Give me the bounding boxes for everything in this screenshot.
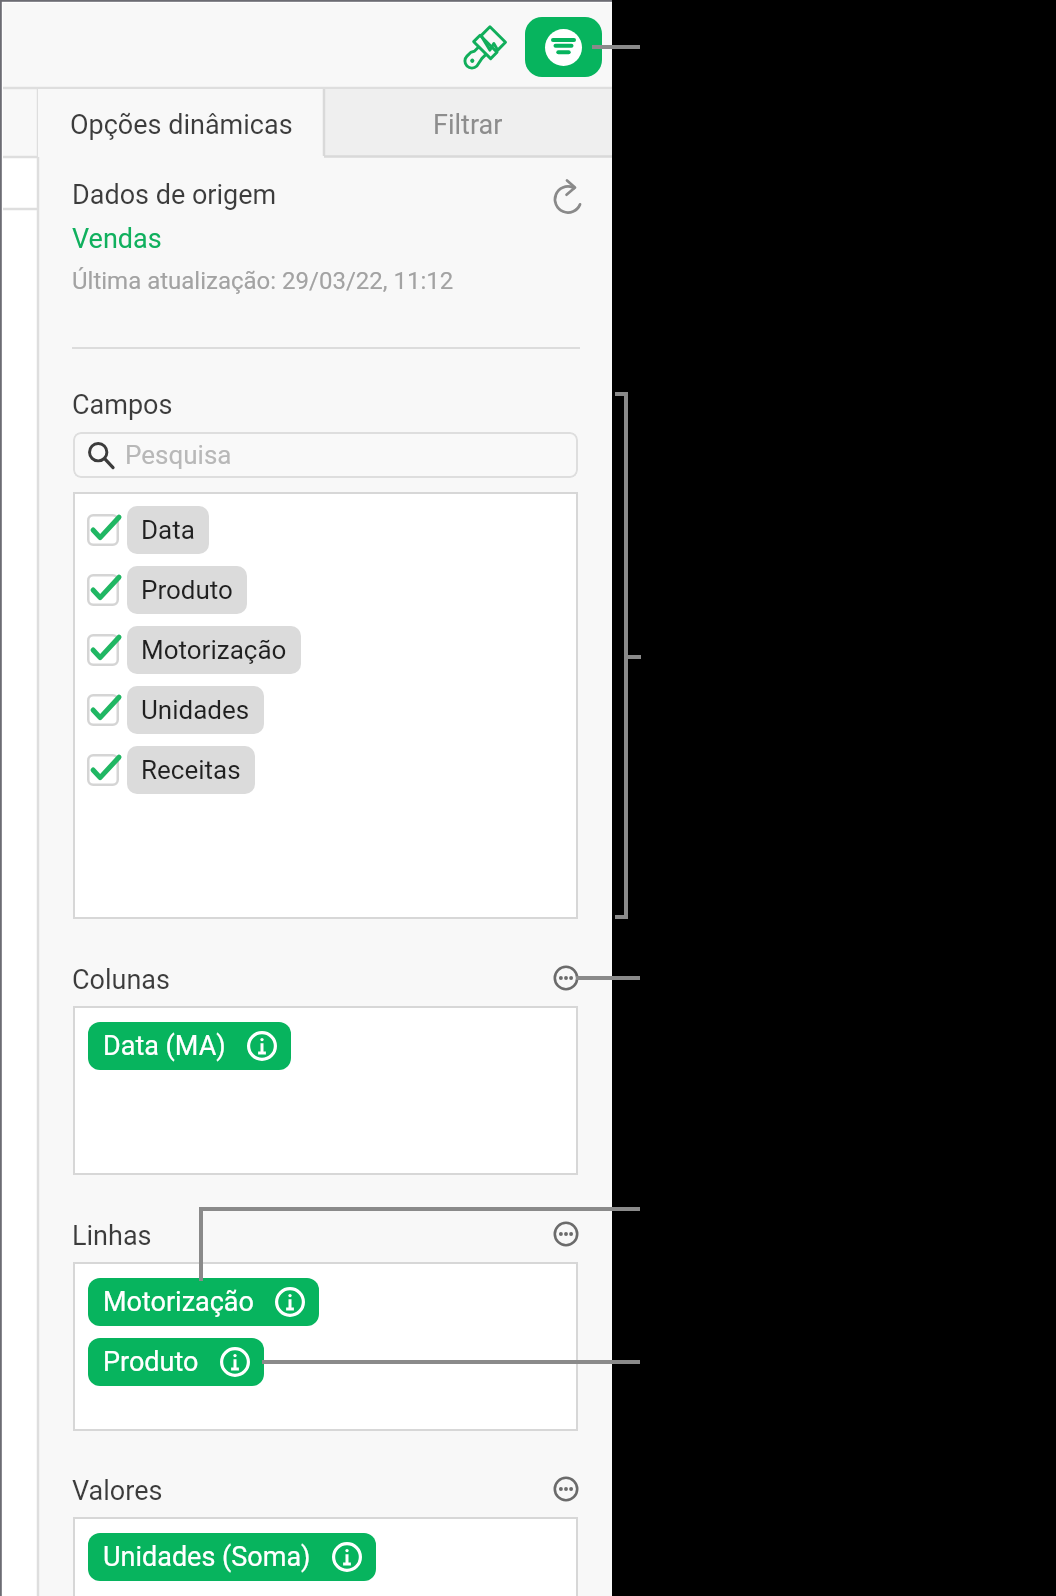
staticText: Motorização bbox=[141, 635, 287, 665]
staticText: Linhas bbox=[72, 1220, 152, 1252]
button[interactable]: Unidades bbox=[87, 680, 264, 740]
staticText: Colunas bbox=[72, 964, 170, 996]
button[interactable]: Refresh bbox=[542, 172, 592, 222]
staticText: Dados de origem bbox=[72, 179, 277, 211]
button[interactable]: Produto bbox=[87, 560, 247, 620]
staticText: Data bbox=[141, 515, 195, 545]
button[interactable]: Pesquisa bbox=[73, 432, 578, 478]
button[interactable]: Organize bbox=[525, 17, 602, 77]
button[interactable]: Colunas options bbox=[544, 956, 587, 999]
staticText: Receitas bbox=[141, 755, 241, 785]
staticText: Opções dinâmicas bbox=[70, 109, 293, 141]
staticText: Data (MA) bbox=[103, 1030, 226, 1062]
button[interactable]: Motorização bbox=[88, 1278, 319, 1326]
staticText: Filtrar bbox=[433, 109, 503, 141]
button[interactable]: Data (MA) bbox=[88, 1022, 291, 1070]
button[interactable]: Valores options bbox=[544, 1467, 587, 1510]
staticText: Última atualização: 29/03/22, 11:12 bbox=[72, 267, 454, 295]
staticText: Produto bbox=[103, 1346, 199, 1378]
staticText: Unidades (Soma) bbox=[103, 1541, 311, 1573]
button[interactable]: Data bbox=[87, 500, 209, 560]
button[interactable]: Linhas options bbox=[544, 1212, 587, 1255]
staticText: Motorização bbox=[103, 1286, 254, 1318]
button[interactable]: Format bbox=[462, 25, 508, 71]
staticText: Campos bbox=[72, 389, 173, 421]
staticText: Produto bbox=[141, 575, 233, 605]
button[interactable]: Opções dinâmicas bbox=[38, 89, 324, 157]
button[interactable]: Unidades (Soma) bbox=[88, 1533, 376, 1581]
button[interactable]: Receitas bbox=[87, 740, 255, 800]
button[interactable]: Produto bbox=[88, 1338, 264, 1386]
button[interactable]: Filtrar bbox=[324, 89, 612, 157]
staticText: Pesquisa bbox=[125, 440, 232, 470]
staticText: Valores bbox=[72, 1475, 163, 1507]
button[interactable]: Motorização bbox=[87, 620, 301, 680]
staticText: Unidades bbox=[141, 695, 250, 725]
staticText: Vendas bbox=[72, 223, 162, 255]
